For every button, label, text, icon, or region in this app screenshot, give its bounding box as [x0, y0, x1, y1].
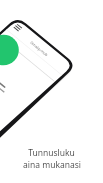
staticText: aina mukanasi: [23, 159, 81, 171]
staticText: Tunnusluku: [28, 147, 75, 159]
